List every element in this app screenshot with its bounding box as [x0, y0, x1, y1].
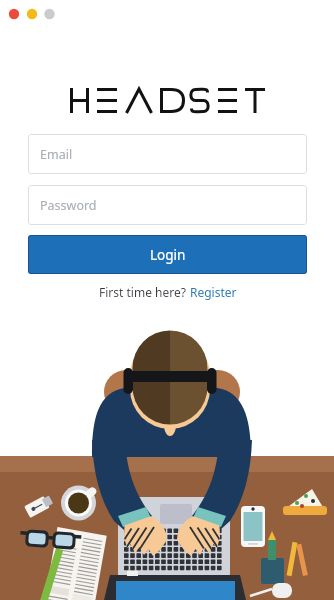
button[interactable]: Email: [28, 134, 307, 174]
staticText: Password: [40, 197, 97, 214]
button[interactable]: Login: [28, 235, 307, 274]
button[interactable]: Password: [28, 185, 307, 225]
staticText: Register: [190, 284, 237, 300]
staticText: First time here?: [99, 284, 190, 300]
button[interactable]: Register: [190, 284, 237, 300]
staticText: Email: [40, 146, 73, 163]
staticText: Login: [150, 246, 186, 264]
